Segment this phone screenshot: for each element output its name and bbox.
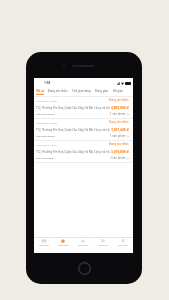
button[interactable]: 14/03/2023 - 17:46 <box>34 141 133 162</box>
staticText: #TESTOR-00002 <box>36 112 55 115</box>
staticText: T12, Phường Yên Hoà, Quận Cầu Giấy, Hà N… <box>36 128 94 132</box>
staticText: Tài khoản <box>118 244 128 247</box>
staticText: Tất cả <box>36 89 44 93</box>
staticText: Cộng trả hộ: <box>94 128 111 132</box>
button[interactable]: Đơn hàng <box>53 238 73 253</box>
staticText: 15/03/2023 - 09:08 <box>36 121 57 124</box>
staticText: #TESTOR-00003 <box>36 134 55 137</box>
staticText: #TESTOR-00001 <box>36 156 55 159</box>
staticText: Đang giao <box>95 89 109 93</box>
staticText: 3,470,000 đ <box>111 150 129 154</box>
staticText: 1 sản phẩm <box>110 134 126 138</box>
button[interactable]: 15/03/2023 - 09:40 <box>34 97 133 118</box>
staticText: Đã giao <box>113 89 123 93</box>
staticText: T12, Phường Yên Hoà, Quận Cầu Giấy, Hà N… <box>36 106 94 110</box>
staticText: Đang xác nhận <box>109 142 129 146</box>
button[interactable]: Tài khoản <box>113 238 133 253</box>
button[interactable]: Giới thiệu <box>93 238 113 253</box>
button[interactable]: Giới thiệu <box>34 238 53 253</box>
staticText: T12, Phường Yên Hoà, Quận Cầu Giấy, Hà N… <box>36 150 94 154</box>
staticText: Đơn hàng <box>58 244 69 247</box>
staticText: Đang xác nhận <box>109 120 129 124</box>
staticText: Thông báo <box>77 244 89 247</box>
staticText: Đang xác nhận <box>48 89 68 93</box>
button[interactable]: Chờ giao hàng <box>70 88 93 93</box>
button[interactable]: Thông báo <box>73 238 93 253</box>
button[interactable]: Tất cả <box>34 88 46 93</box>
staticText: 14/03/2023 - 17:46 <box>36 143 57 146</box>
staticText: 1 sản phẩm <box>110 112 126 116</box>
button[interactable]: Đang giao <box>93 88 111 93</box>
staticText: 3,201,445 đ <box>111 128 129 132</box>
button[interactable]: Đang xác nhận <box>46 88 70 93</box>
staticText: Đang xác nhận <box>109 98 129 102</box>
staticText: 2 sản phẩm <box>110 156 126 160</box>
staticText: 1:58 <box>44 81 51 85</box>
staticText: Giới thiệu <box>39 244 49 247</box>
staticText: Giới thiệu <box>98 244 108 247</box>
staticText: Cộng trả hộ: <box>94 106 111 110</box>
staticText: 4,800,000 đ <box>111 106 129 110</box>
staticText: 15/03/2023 - 09:40 <box>36 99 57 102</box>
staticText: Cộng trả hộ: <box>94 150 111 154</box>
button[interactable]: Đã giao <box>111 88 125 93</box>
button[interactable]: 15/03/2023 - 09:08 <box>34 119 133 140</box>
staticText: Chờ giao hàng <box>72 89 91 93</box>
